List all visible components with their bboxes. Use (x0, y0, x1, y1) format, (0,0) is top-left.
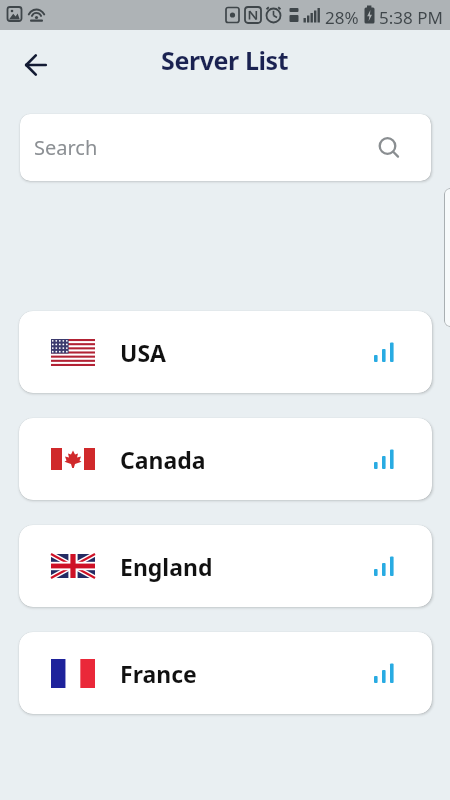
staticText: 28% (325, 6, 359, 29)
button[interactable]: Canada (19, 418, 432, 500)
button[interactable]: England (19, 525, 432, 607)
staticText: England (120, 551, 213, 582)
staticText: Search (34, 134, 98, 161)
button[interactable]: Search (20, 114, 431, 181)
staticText: France (120, 658, 197, 689)
staticText: Server List (161, 43, 289, 77)
staticText: USA (120, 337, 166, 368)
button[interactable]: USA (19, 311, 432, 393)
button[interactable] (18, 47, 54, 83)
staticText: 5:38 PM (379, 6, 443, 29)
button[interactable]: France (19, 632, 432, 714)
staticText: Canada (120, 444, 206, 475)
